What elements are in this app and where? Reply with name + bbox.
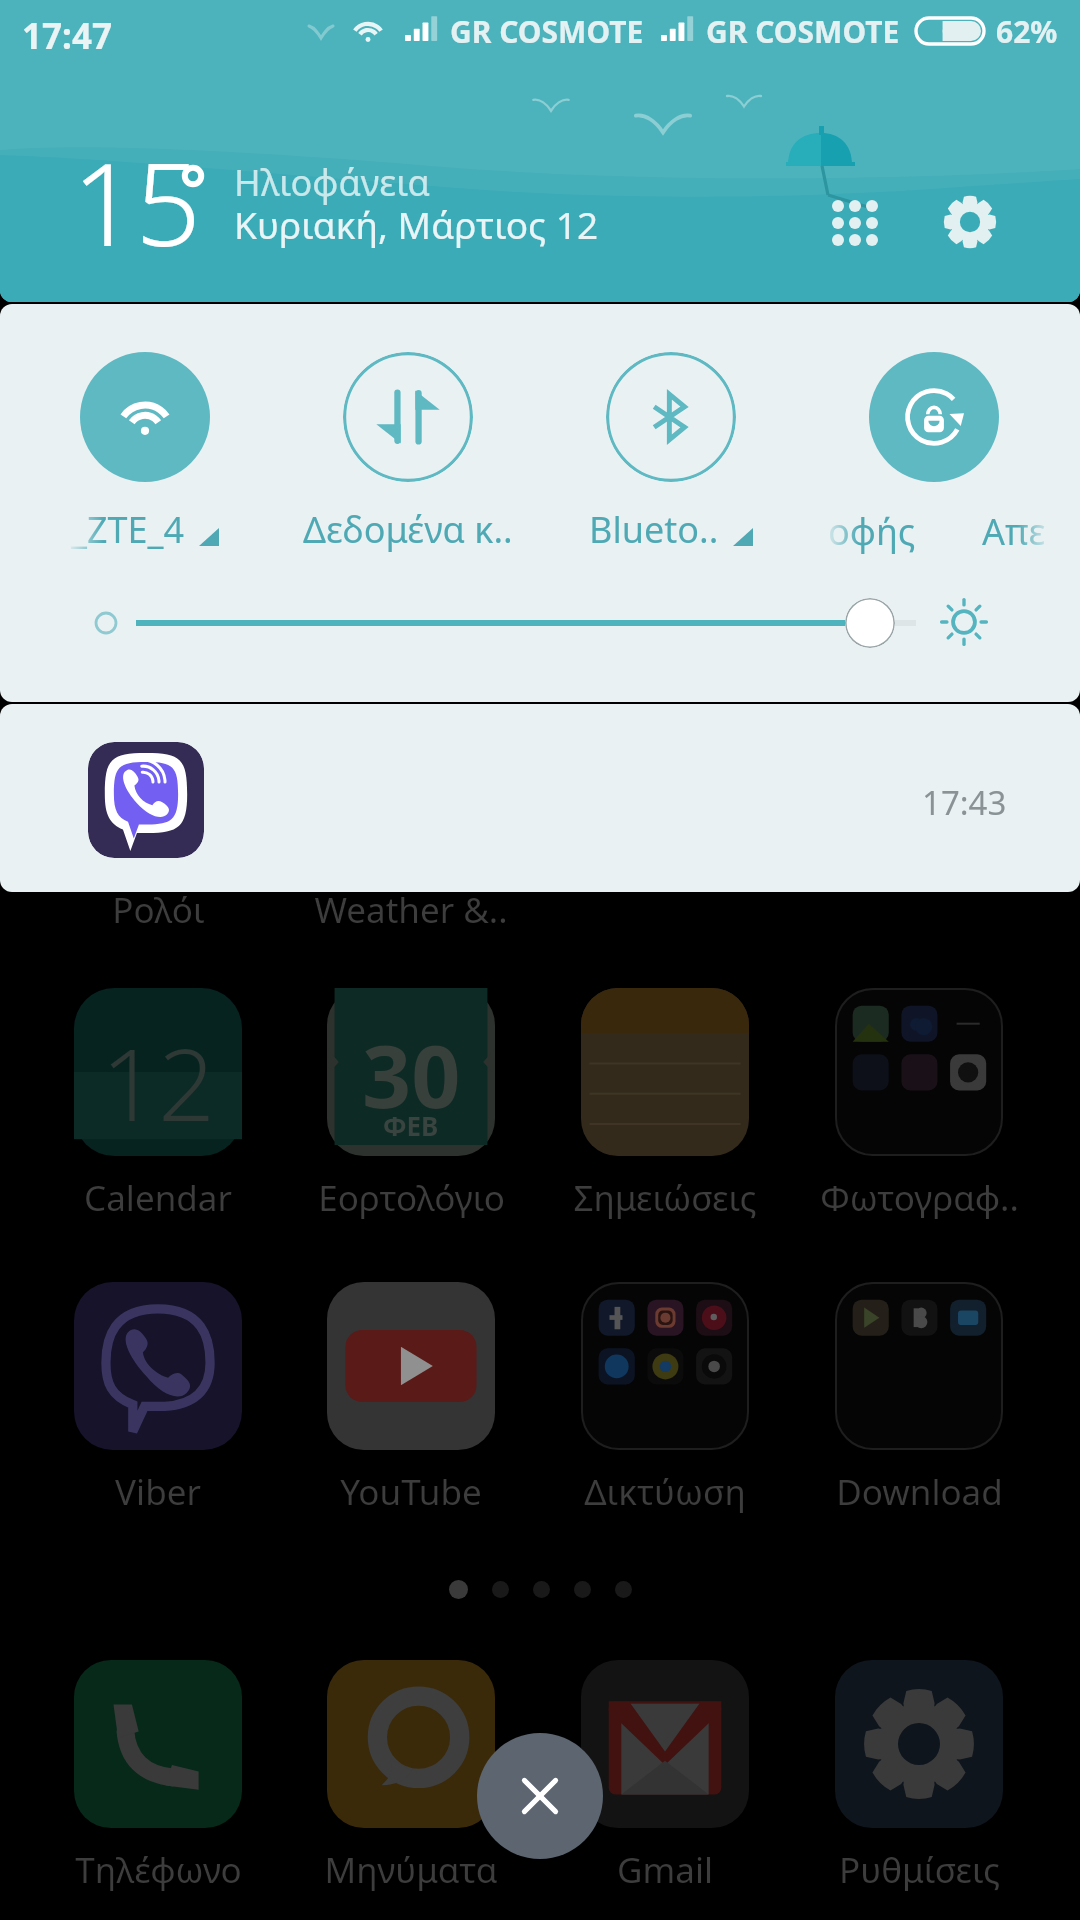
staticText: Viber [115,1468,201,1516]
button[interactable]: Brightness [845,598,895,648]
staticText: YouTube [340,1468,482,1516]
button[interactable]: Σημειώσεις [535,1174,795,1222]
button[interactable]: Μηνύματα [281,1846,541,1894]
staticText: Κυριακή, Μάρτιος 12 [234,199,599,249]
button[interactable]: App drawer [804,172,914,282]
staticText: GR COSMOTE [450,11,644,52]
staticText: Weather &.. [314,886,508,934]
staticText: Δεδομένα κ.. [303,505,513,554]
button[interactable]: YouTube [281,1468,541,1516]
staticText: Εορτολόγιο [318,1174,505,1222]
staticText: Φωτογραφ.. [820,1174,1019,1222]
staticText: 15 [72,123,199,280]
button[interactable]: Download [789,1468,1049,1516]
button[interactable]: 17:43 [0,704,1080,892]
staticText: ΦΕΒ [383,1108,439,1143]
staticText: Μηνύματα [324,1846,498,1894]
staticText: Ηλιοφάνεια [234,158,430,207]
staticText: GR COSMOTE [706,11,900,52]
staticText: _ZTE_4 [71,505,185,554]
button[interactable]: Quick setting [869,352,999,482]
staticText: 12 [101,1014,216,1150]
button[interactable]: Τηλέφωνο [28,1846,288,1894]
button[interactable]: Quick setting [343,352,473,482]
staticText: Gmail [617,1846,713,1894]
button[interactable]: Viber [28,1468,288,1516]
button[interactable]: Settings [912,164,1028,280]
staticText: Ρολόι [112,886,205,934]
staticText: Απε [982,507,1046,556]
staticText: 17:43 [922,780,1007,825]
button[interactable]: Quick setting [80,352,210,482]
button[interactable]: Gmail [535,1846,795,1894]
staticText: Download [836,1468,1003,1516]
staticText: 30 [362,1016,461,1133]
button[interactable]: Εορτολόγιο [281,1174,541,1222]
staticText: Σημειώσεις [573,1174,757,1222]
staticText: 17:47 [22,12,112,60]
staticText: Ρυθμίσεις [839,1846,1000,1894]
button[interactable]: Close [477,1733,603,1859]
staticText: Blueto.. [589,505,719,554]
staticText: Calendar [84,1174,232,1222]
staticText: Τηλέφωνο [75,1846,242,1894]
button[interactable]: Calendar [28,1174,288,1222]
staticText: 62% [996,11,1058,52]
button[interactable]: Quick setting [606,352,736,482]
button[interactable]: Δικτύωση [535,1468,795,1516]
button[interactable]: Ρυθμίσεις [789,1846,1049,1894]
button[interactable]: Φωτογραφ.. [789,1174,1049,1222]
staticText: οφής [828,507,916,556]
staticText: Δικτύωση [584,1468,746,1516]
